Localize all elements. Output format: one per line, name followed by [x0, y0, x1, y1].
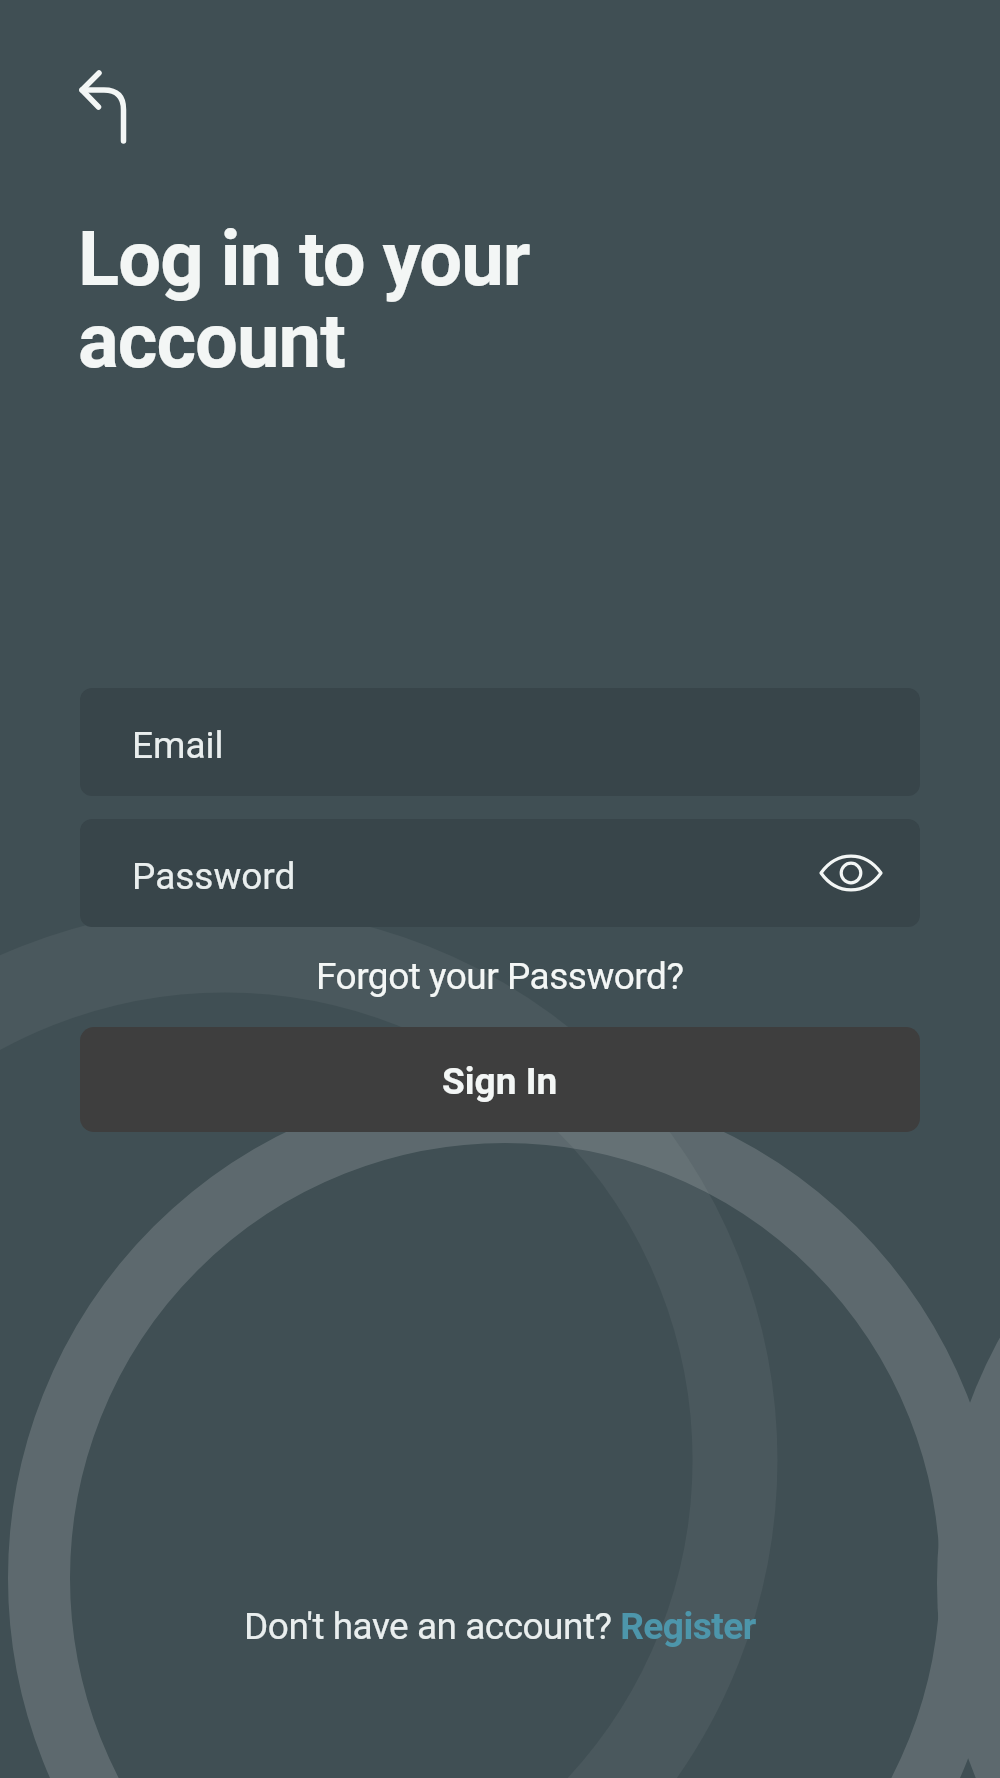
button[interactable]: Email: [80, 688, 920, 796]
staticText: Log in to your account: [78, 214, 530, 385]
button[interactable]: Don't have an account? Register: [244, 1605, 756, 1648]
staticText: Don't have an account? Register: [244, 1605, 756, 1648]
button[interactable]: Sign In: [80, 1027, 920, 1132]
staticText: Forgot your Password?: [316, 955, 684, 998]
button[interactable]: Password: [80, 819, 920, 927]
staticText: Sign In: [442, 1060, 558, 1103]
button[interactable]: [62, 54, 146, 146]
staticText: Email: [132, 724, 224, 767]
staticText: Password: [132, 855, 296, 898]
button[interactable]: Forgot your Password?: [0, 948, 1000, 1004]
